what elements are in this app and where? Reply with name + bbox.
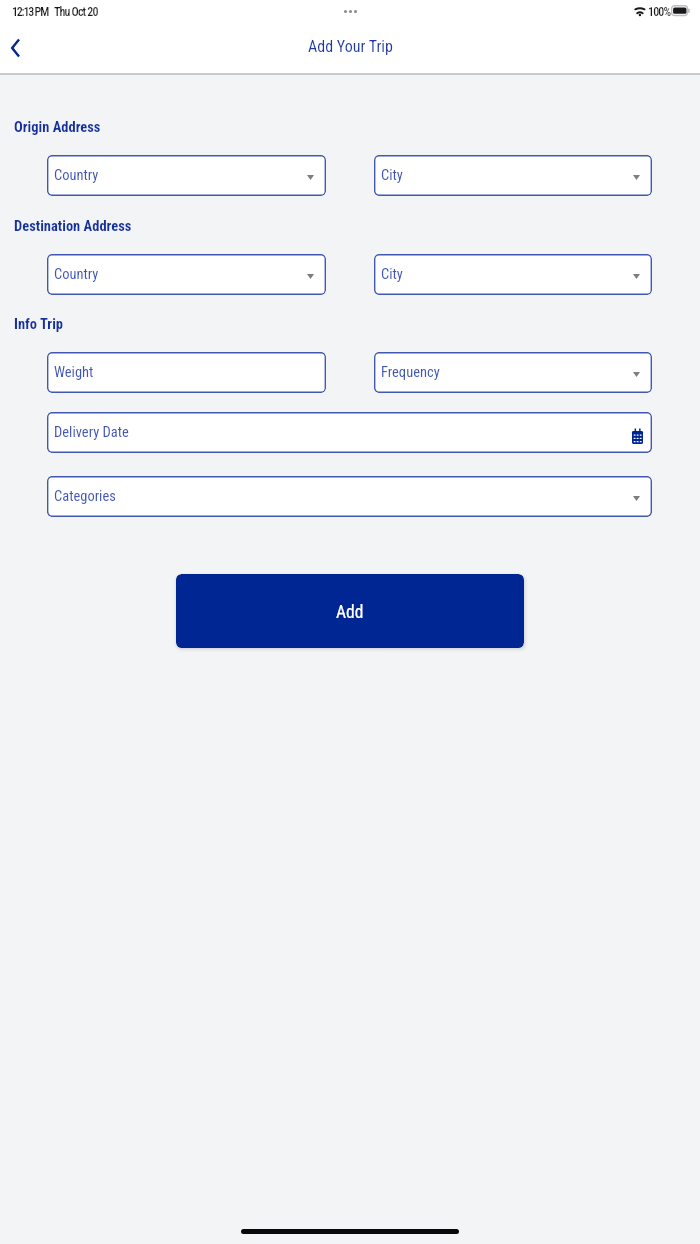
other: Pick delivery date — [632, 428, 643, 444]
staticText: Add Your Trip — [308, 37, 393, 56]
staticText: Origin Address — [14, 119, 101, 136]
staticText: 12:13 PM — [12, 5, 49, 19]
staticText: Country — [54, 167, 99, 184]
button[interactable]: City — [374, 254, 652, 295]
other: Battery 100 percent — [671, 5, 690, 17]
staticText: Info Trip — [14, 316, 63, 333]
button[interactable]: Country — [47, 155, 326, 196]
staticText: 100% — [648, 5, 671, 19]
staticText: City — [381, 266, 403, 283]
staticText: Add — [336, 602, 364, 623]
staticText: Delivery Date — [54, 424, 129, 441]
staticText: Weight — [54, 364, 94, 381]
button[interactable]: Weight — [47, 352, 326, 393]
button[interactable]: City — [374, 155, 652, 196]
staticText: Country — [54, 266, 99, 283]
staticText: Frequency — [381, 364, 440, 381]
button[interactable]: Delivery Date — [47, 412, 652, 453]
button[interactable]: Add — [176, 574, 524, 648]
button[interactable]: Country — [47, 254, 326, 295]
staticText: Thu Oct 20 — [54, 5, 98, 19]
button[interactable]: Back — [0, 28, 30, 70]
staticText: City — [381, 167, 403, 184]
button[interactable]: Frequency — [374, 352, 652, 393]
staticText: Categories — [54, 488, 116, 505]
other: Wi-Fi — [634, 5, 646, 17]
staticText: Destination Address — [14, 218, 132, 235]
button[interactable]: Categories — [47, 476, 652, 517]
